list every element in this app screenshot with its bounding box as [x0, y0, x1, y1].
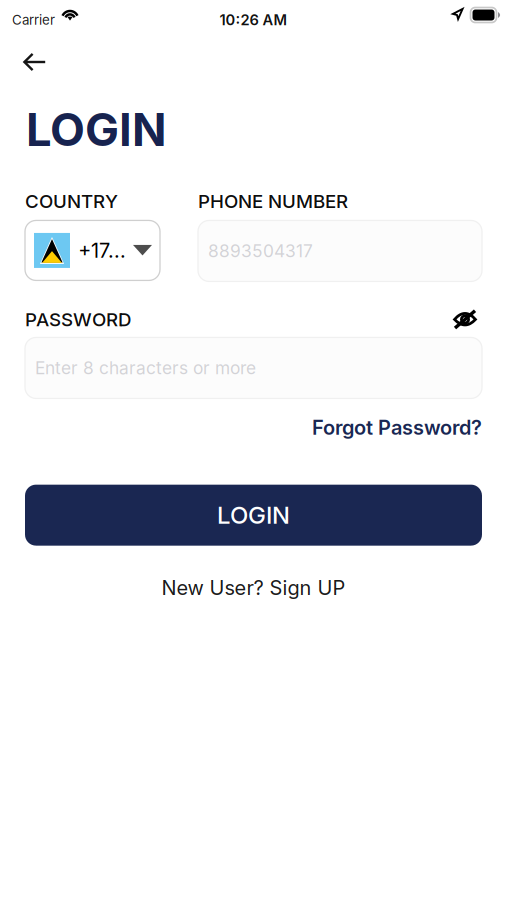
- button[interactable]: Show password: [449, 307, 481, 331]
- button[interactable]: LOGIN: [25, 485, 482, 546]
- button[interactable]: Forgot Password?: [312, 411, 482, 444]
- staticText: LOGIN: [26, 102, 167, 157]
- button[interactable]: +17...: [25, 220, 160, 280]
- staticText: LOGIN: [217, 501, 290, 530]
- button[interactable]: New User? Sign UP: [161, 570, 345, 606]
- staticText: Enter 8 characters or more: [35, 357, 256, 378]
- staticText: PHONE NUMBER: [198, 190, 348, 212]
- staticText: 10:26 AM: [219, 11, 287, 29]
- staticText: PASSWORD: [25, 308, 131, 331]
- staticText: Forgot Password?: [312, 415, 482, 440]
- staticText: Carrier: [12, 12, 55, 28]
- staticText: New User? Sign UP: [161, 576, 345, 600]
- staticText: COUNTRY: [25, 190, 118, 212]
- staticText: +17...: [78, 238, 126, 262]
- button[interactable]: Back: [0, 43, 62, 81]
- staticText: 8893504317: [208, 240, 313, 261]
